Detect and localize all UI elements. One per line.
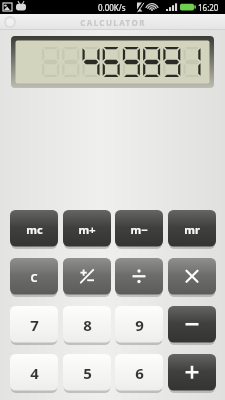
button[interactable]: m+ xyxy=(63,210,111,248)
button[interactable]: mr xyxy=(168,210,216,248)
button[interactable]: C xyxy=(10,258,58,296)
button[interactable]: 6 xyxy=(115,354,163,392)
button[interactable]: 5 xyxy=(63,354,111,392)
button[interactable]: 9 xyxy=(115,306,163,344)
button[interactable]: Subtract xyxy=(168,306,216,344)
button[interactable]: 8 xyxy=(63,306,111,344)
button[interactable]: m− xyxy=(115,210,163,248)
staticText: 0.00K/s xyxy=(98,2,126,13)
staticText: 9 xyxy=(135,315,144,335)
button[interactable]: 7 xyxy=(10,306,58,344)
button[interactable]: Multiply xyxy=(168,258,216,296)
staticText: 6 xyxy=(135,363,144,383)
button[interactable]: Divide xyxy=(115,258,163,296)
button[interactable]: Add xyxy=(168,354,216,392)
button[interactable]: Plus minus sign xyxy=(63,258,111,296)
button[interactable]: CALCULATOR xyxy=(0,14,225,30)
button[interactable]: 4 xyxy=(10,354,58,392)
staticText: 4 xyxy=(30,363,39,383)
staticText: mc xyxy=(26,222,43,237)
staticText: 8 xyxy=(83,315,92,335)
staticText: 5 xyxy=(83,363,92,383)
staticText: m+ xyxy=(78,222,96,237)
staticText: 7 xyxy=(30,315,39,335)
staticText: CALCULATOR xyxy=(80,17,146,28)
staticText: mr xyxy=(184,222,200,237)
staticText: m− xyxy=(130,222,148,237)
button[interactable]: mc xyxy=(10,210,58,248)
staticText: C xyxy=(30,270,38,285)
staticText: 16:20 xyxy=(198,2,219,13)
